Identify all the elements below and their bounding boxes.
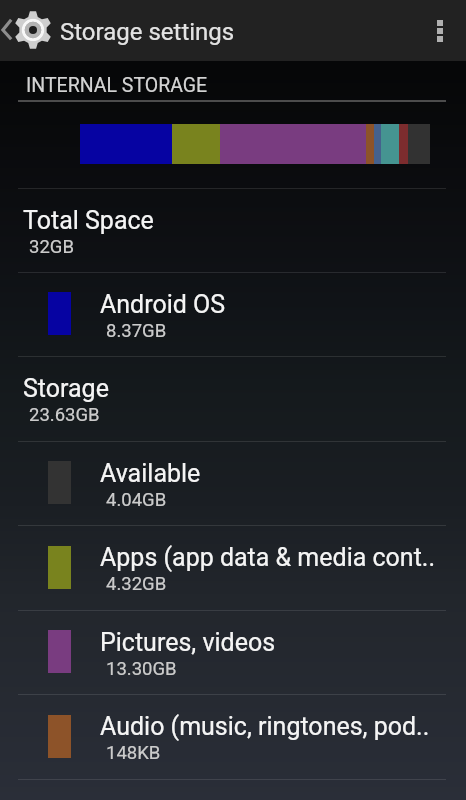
button[interactable]: Pictures, videos <box>0 610 466 694</box>
staticText: 23.63GB <box>29 404 100 426</box>
staticText: Pictures, videos <box>100 628 276 657</box>
staticText: Total Space <box>23 206 154 235</box>
button[interactable]: Android OS <box>0 272 466 356</box>
staticText: INTERNAL STORAGE <box>26 74 208 97</box>
staticText: 4.04GB <box>106 489 167 511</box>
staticText: Android OS <box>100 290 226 319</box>
button[interactable]: More options <box>414 0 466 61</box>
button[interactable]: Apps (app data & media cont.. <box>0 525 466 610</box>
staticText: Audio (music, ringtones, pod.. <box>100 712 430 741</box>
button[interactable]: Storage <box>0 356 466 441</box>
staticText: 13.30GB <box>106 658 177 680</box>
button[interactable]: Total Space <box>0 188 466 272</box>
staticText: Available <box>100 459 201 488</box>
staticText: 148KB <box>106 742 161 764</box>
button[interactable]: Available <box>0 441 466 525</box>
staticText: Storage <box>23 374 109 403</box>
button[interactable]: Navigate up, Storage settings <box>0 0 240 61</box>
staticText: 32GB <box>29 236 74 258</box>
button[interactable]: Audio (music, ringtones, pod.. <box>0 694 466 779</box>
staticText: Storage settings <box>60 18 235 46</box>
staticText: 4.32GB <box>106 573 167 595</box>
staticText: 8.37GB <box>106 320 167 342</box>
staticText: Apps (app data & media cont.. <box>100 543 436 572</box>
